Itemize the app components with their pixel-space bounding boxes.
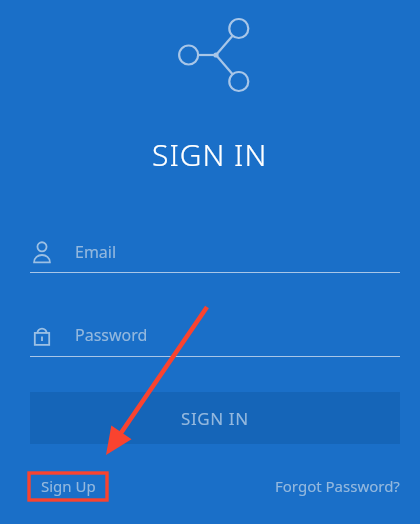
staticText: SIGN IN — [152, 134, 268, 175]
staticText: Sign Up — [41, 476, 96, 496]
button[interactable]: Password — [30, 319, 400, 351]
staticText: Forgot Password? — [275, 476, 400, 496]
staticText: Password — [75, 324, 148, 346]
other: Password — [30, 322, 54, 348]
other: Email — [30, 239, 54, 265]
button[interactable]: SIGN IN — [30, 392, 400, 444]
button[interactable]: Sign Up — [31, 474, 105, 498]
staticText: Email — [75, 241, 117, 263]
other: App logo — [178, 16, 254, 94]
button[interactable]: Forgot Password? — [268, 474, 400, 498]
staticText: SIGN IN — [181, 407, 249, 430]
button[interactable]: Email — [30, 236, 400, 268]
